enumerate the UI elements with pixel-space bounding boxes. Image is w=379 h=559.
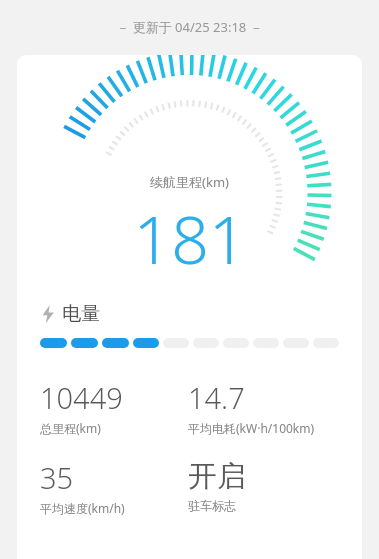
staticText: 10449: [40, 378, 123, 417]
button[interactable]: 14.7: [188, 378, 350, 436]
staticText: 续航里程(km): [150, 173, 229, 191]
other: Battery: [40, 304, 56, 324]
staticText: － 更新于 04/25 23:18 －: [116, 18, 263, 36]
staticText: 平均电耗(kW·h/100km): [188, 420, 315, 436]
staticText: 181: [133, 193, 247, 283]
staticText: 开启: [188, 458, 246, 495]
button[interactable]: 10449: [40, 378, 188, 436]
staticText: 14.7: [188, 378, 245, 417]
button[interactable]: 35: [40, 458, 188, 516]
staticText: 总里程(km): [40, 420, 101, 436]
button[interactable]: 开启: [188, 458, 350, 513]
button[interactable]: Battery: [40, 302, 100, 326]
staticText: 驻车标志: [188, 498, 236, 513]
button[interactable]: [40, 338, 339, 348]
staticText: 电量: [62, 302, 100, 326]
staticText: 平均速度(km/h): [40, 500, 125, 516]
staticText: 35: [40, 458, 74, 497]
